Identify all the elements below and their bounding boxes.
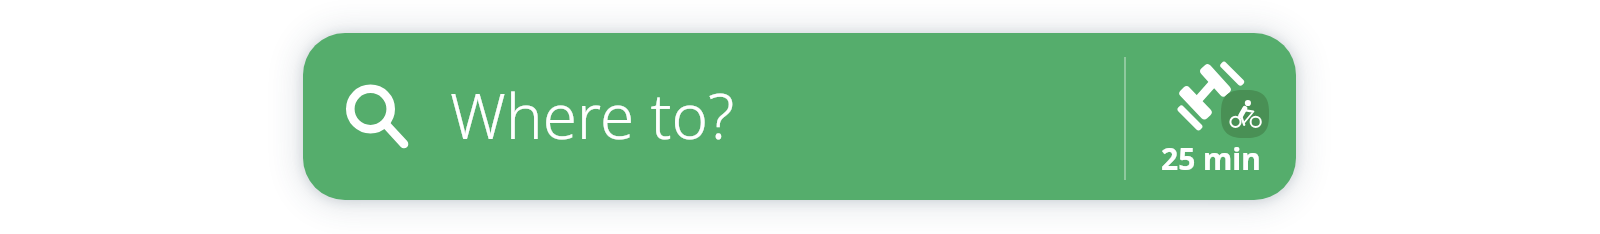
button[interactable]: Where to? (303, 33, 1121, 200)
staticText: 25 min (1161, 138, 1261, 179)
staticText: Where to? (450, 73, 735, 157)
button[interactable]: Directions by bike, 25 min (1130, 33, 1296, 200)
